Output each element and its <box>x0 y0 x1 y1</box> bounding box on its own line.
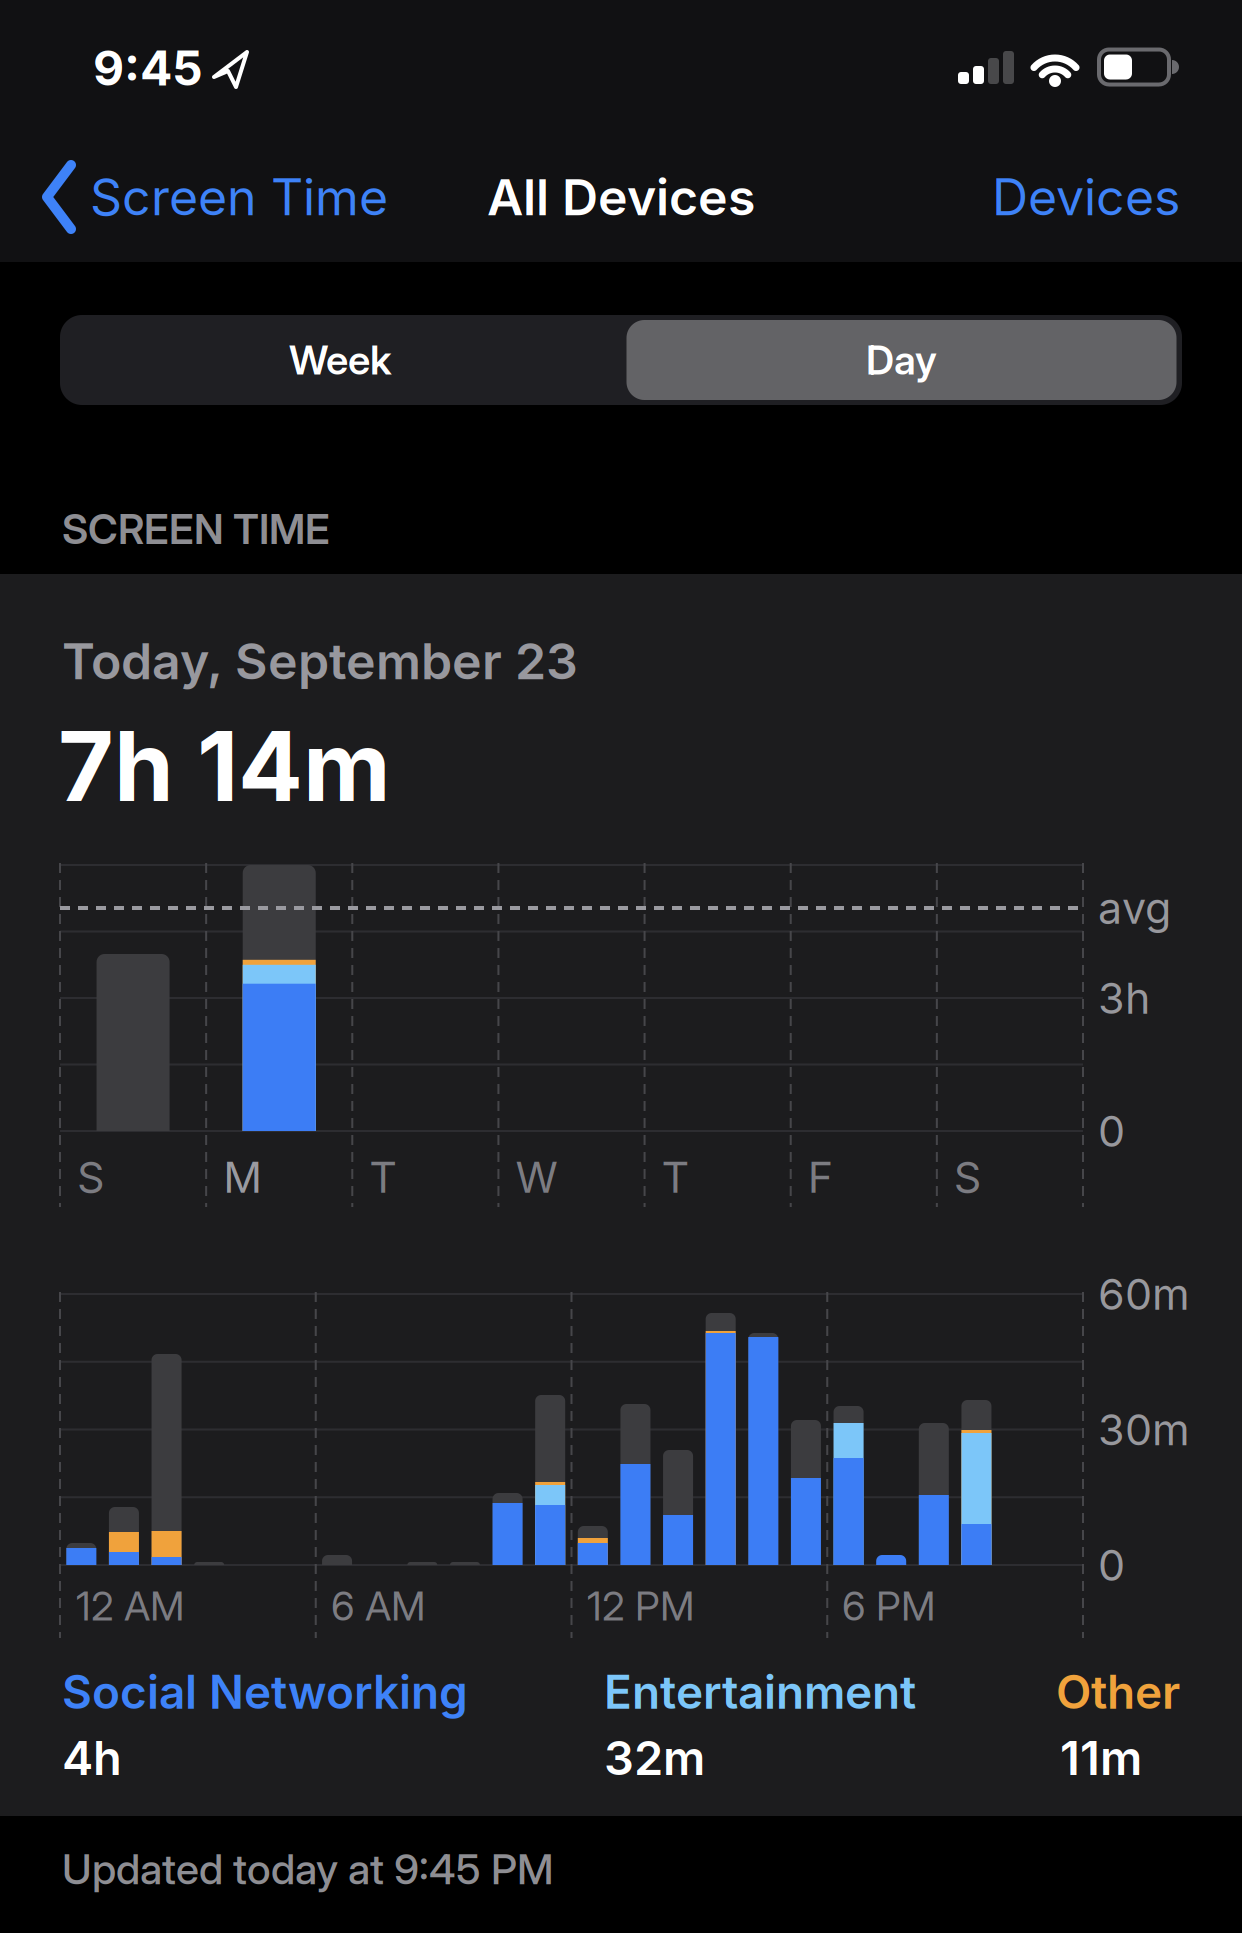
staticText: 11m <box>1060 1730 1142 1786</box>
button[interactable]: Devices <box>920 152 1180 242</box>
staticText: avg <box>1098 883 1171 933</box>
staticText: 12 PM <box>587 1582 694 1630</box>
staticText: 0 <box>1098 1540 1125 1590</box>
staticText: Today, September 23 <box>62 631 578 690</box>
staticText: F <box>808 1152 833 1202</box>
button[interactable]: Day <box>621 315 1182 405</box>
staticText: All Devices <box>487 167 755 226</box>
staticText: 9:45 <box>93 40 203 96</box>
staticText: 12 AM <box>76 1582 184 1630</box>
button[interactable]: Week <box>60 315 621 405</box>
staticText: Week <box>289 336 392 384</box>
staticText: 6 AM <box>331 1582 425 1630</box>
staticText: Updated today at 9:45 PM <box>62 1844 554 1894</box>
staticText: Social Networking <box>62 1665 468 1719</box>
staticText: 3h <box>1098 973 1150 1023</box>
staticText: 6 PM <box>842 1582 935 1630</box>
staticText: S <box>77 1152 105 1202</box>
staticText: Day <box>866 336 937 384</box>
staticText: 7h 14m <box>58 709 391 823</box>
staticText: 60m <box>1098 1269 1190 1319</box>
staticText: 0 <box>1098 1106 1125 1156</box>
staticText: W <box>515 1152 557 1202</box>
staticText: M <box>223 1152 262 1202</box>
staticText: T <box>662 1152 690 1202</box>
staticText: 4h <box>62 1730 122 1786</box>
button[interactable]: Screen Time <box>42 152 482 242</box>
staticText: SCREEN TIME <box>62 505 330 553</box>
staticText: Entertainment <box>604 1665 916 1719</box>
staticText: 30m <box>1098 1404 1190 1455</box>
staticText: 32m <box>604 1730 705 1786</box>
staticText: T <box>369 1152 397 1202</box>
staticText: Devices <box>992 167 1180 226</box>
staticText: Other <box>1056 1665 1180 1719</box>
staticText: S <box>954 1152 982 1202</box>
staticText: Screen Time <box>90 167 388 226</box>
